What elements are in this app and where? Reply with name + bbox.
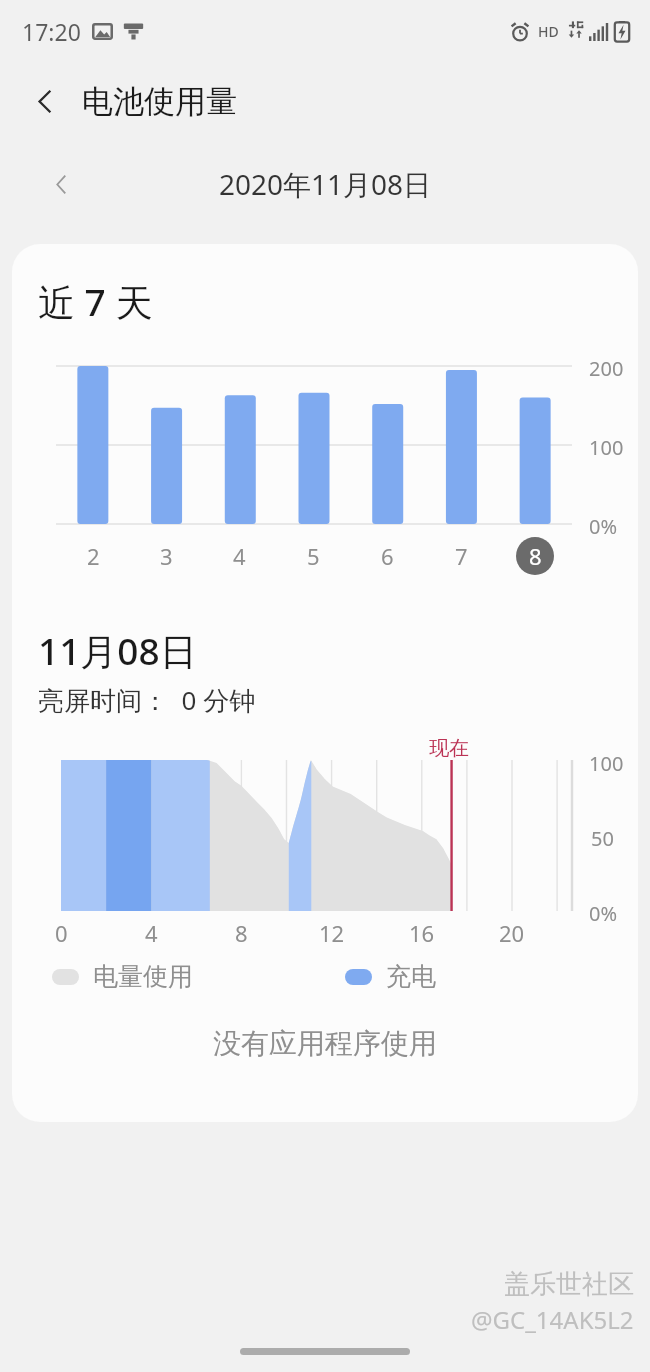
button[interactable]: 4 [220, 537, 258, 575]
button[interactable]: 7 [442, 537, 480, 575]
button[interactable]: 3 [147, 537, 185, 575]
staticText: @GC_14AK5L2 [471, 1303, 634, 1336]
staticText: 8 [529, 541, 542, 571]
staticText: 7 [455, 541, 468, 571]
staticText: 2 [87, 541, 100, 571]
button[interactable]: 2 [74, 537, 112, 575]
staticText: 5 [307, 541, 320, 571]
button[interactable]: 6 [368, 537, 406, 575]
staticText: 4 [233, 541, 246, 571]
staticText: 0% [589, 513, 618, 540]
button[interactable]: 5 [294, 537, 332, 575]
button[interactable]: 8 [516, 537, 554, 575]
staticText: 17:20 [22, 16, 81, 47]
staticText: 近 7 天 [38, 276, 153, 327]
staticText: 8 [235, 918, 248, 948]
staticText: 50 [591, 825, 614, 852]
staticText: 3 [160, 541, 173, 571]
button[interactable]: Back [18, 74, 72, 128]
staticText: 12 [319, 918, 345, 948]
staticText: 100 [589, 434, 624, 461]
staticText: 20 [499, 918, 525, 948]
staticText: 现在 [429, 736, 469, 761]
staticText: 亮屏时间： 0 分钟 [38, 682, 256, 718]
staticText: 电池使用量 [82, 82, 237, 121]
staticText: 盖乐世社区 [504, 1268, 634, 1301]
staticText: 16 [409, 918, 435, 948]
staticText: 没有应用程序使用 [12, 1026, 638, 1061]
staticText: 0% [589, 900, 618, 927]
staticText: 11月08日 [38, 625, 197, 676]
staticText: 100 [589, 750, 624, 777]
staticText: 200 [589, 355, 624, 382]
staticText: 充电 [386, 961, 436, 992]
staticText: 2020年11月08日 [219, 165, 432, 203]
staticText: 0 [55, 918, 68, 948]
staticText: 4 [145, 918, 158, 948]
staticText: 电量使用 [93, 961, 193, 992]
staticText: HD [538, 22, 559, 41]
button[interactable]: 充电 [345, 961, 436, 992]
button[interactable]: Previous day [36, 159, 86, 209]
button[interactable]: 电量使用 [52, 961, 193, 992]
staticText: 6 [381, 541, 394, 571]
